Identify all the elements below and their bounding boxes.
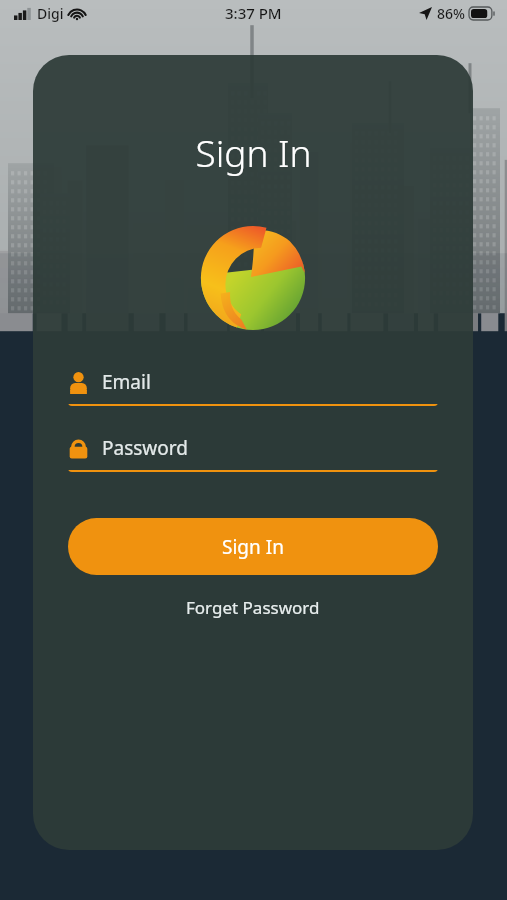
button[interactable]: Email [68,369,438,406]
staticText: Sign In [195,127,312,177]
button[interactable]: Password [68,435,438,472]
staticText: 3:37 PM [225,3,282,23]
staticText: Sign In [222,534,284,560]
staticText: Password [102,435,188,461]
button[interactable]: Forget Password [168,589,338,626]
staticText: Digi [37,4,64,23]
staticText: Email [102,369,151,395]
button[interactable]: Sign In [68,518,438,575]
staticText: 86% [437,4,465,23]
staticText: Forget Password [186,596,320,619]
